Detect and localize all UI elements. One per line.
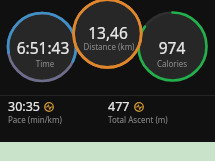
staticText: Distance (km) [49, 41, 169, 52]
staticText: 30:35 [8, 98, 40, 115]
staticText: 6:51:43 [0, 37, 103, 58]
other: Metric info [44, 102, 54, 112]
staticText: 974 [112, 37, 215, 58]
staticText: Total Ascent (m) [108, 114, 168, 125]
button[interactable]: 30:35 [8, 98, 108, 126]
other: Metric info [134, 102, 144, 112]
staticText: 13,46 [48, 22, 168, 43]
staticText: Calories [112, 58, 215, 69]
staticText: 477 [108, 98, 130, 115]
staticText: Pace (min/km) [8, 114, 62, 125]
button[interactable]: 477 [108, 98, 214, 126]
staticText: Time [0, 58, 105, 69]
